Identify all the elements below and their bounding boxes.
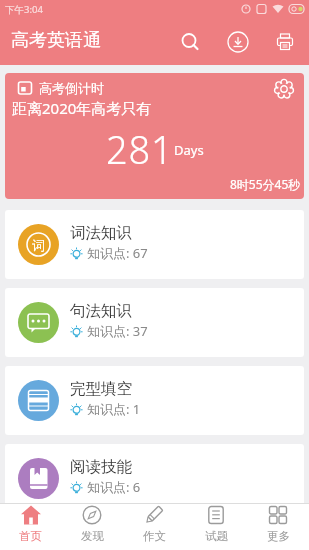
staticText: 知识点: 6 <box>87 478 141 496</box>
button[interactable] <box>221 25 255 59</box>
button[interactable]: 阅读技能 <box>5 444 304 513</box>
staticText: 试题 <box>205 529 228 543</box>
staticText: 完型填空 <box>70 379 132 399</box>
staticText: 高考倒计时 <box>39 80 104 96</box>
button[interactable] <box>173 25 207 59</box>
staticText: 281 <box>106 123 174 175</box>
staticText: 词 <box>32 237 45 253</box>
staticText: 作文 <box>143 529 166 543</box>
button[interactable]: 试题 <box>185 504 247 550</box>
button[interactable] <box>268 25 302 59</box>
staticText: 词法知识 <box>70 223 132 243</box>
button[interactable]: 更多 <box>247 504 309 550</box>
button[interactable]: 作文 <box>123 504 185 550</box>
staticText: 知识点: 1 <box>87 400 141 418</box>
staticText: 8时55分45秒 <box>230 176 301 192</box>
button[interactable]: 首页 <box>0 504 61 550</box>
staticText: 距离2020年高考只有 <box>12 98 152 118</box>
button[interactable]: 句法知识 <box>5 288 304 357</box>
staticText: 更多 <box>267 529 290 543</box>
button[interactable]: 发现 <box>61 504 123 550</box>
button[interactable] <box>271 76 297 102</box>
staticText: 句法知识 <box>70 301 132 321</box>
staticText: 高考英语通 <box>11 29 101 52</box>
staticText: 知识点: 67 <box>87 244 148 262</box>
button[interactable]: 词 <box>5 210 304 279</box>
staticText: 发现 <box>81 529 104 543</box>
staticText: 知识点: 37 <box>87 322 148 340</box>
button[interactable]: 高考倒计时 <box>5 73 304 199</box>
staticText: 下午3:04 <box>5 3 43 16</box>
staticText: 阅读技能 <box>70 457 132 477</box>
staticText: 首页 <box>19 529 42 543</box>
button[interactable]: 完型填空 <box>5 366 304 435</box>
staticText: Days <box>174 141 204 159</box>
